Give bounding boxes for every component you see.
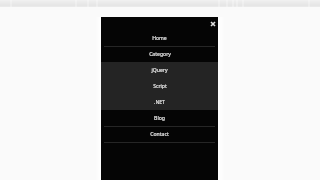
- button[interactable]: Home: [101, 30, 218, 46]
- button[interactable]: jQuery: [101, 62, 218, 78]
- staticText: jQuery: [151, 67, 168, 74]
- button[interactable]: .NET: [101, 94, 218, 110]
- staticText: Script: [153, 83, 167, 90]
- button[interactable]: Blog: [101, 110, 218, 126]
- button[interactable]: Close menu: [208, 19, 218, 29]
- button[interactable]: Contact: [101, 126, 218, 142]
- staticText: Home: [152, 35, 167, 42]
- staticText: Category: [149, 51, 171, 58]
- button[interactable]: Category: [101, 46, 218, 62]
- staticText: Blog: [154, 115, 165, 122]
- staticText: Contact: [150, 131, 169, 138]
- button[interactable]: Script: [101, 78, 218, 94]
- staticText: .NET: [154, 99, 165, 106]
